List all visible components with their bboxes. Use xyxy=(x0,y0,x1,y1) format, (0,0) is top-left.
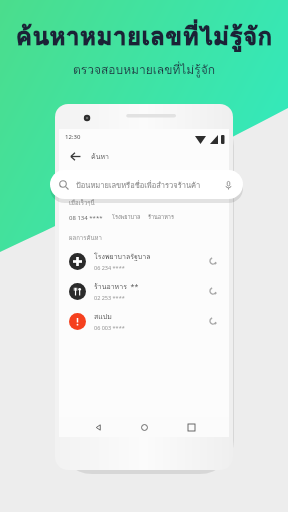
staticText: 08 134 **** xyxy=(69,214,103,222)
button[interactable]: Back xyxy=(90,419,106,435)
button[interactable]: Home xyxy=(136,419,152,435)
button[interactable]: สแปม xyxy=(59,306,229,336)
button[interactable]: Call xyxy=(206,254,220,268)
staticText: 06 234 **** xyxy=(94,264,125,271)
staticText: ผลการค้นหา xyxy=(69,233,102,243)
staticText: ค้นหาหมายเลขที่ไม่รู้จัก xyxy=(0,16,288,56)
staticText: 02 253 **** xyxy=(94,294,125,301)
button[interactable]: โรงพยาบาลรัฐบาล xyxy=(59,246,229,276)
staticText: ร้านอาหาร ** xyxy=(94,281,139,292)
button[interactable]: Call xyxy=(206,314,220,328)
button[interactable]: Recents xyxy=(183,419,199,435)
staticText: ตรวจสอบหมายเลขที่ไม่รู้จัก xyxy=(0,60,288,79)
staticText: ร้านอาหาร xyxy=(148,213,174,222)
button[interactable]: ป้อนหมายเลขหรือชื่อเพื่อสำรวจร้านค้า xyxy=(50,170,243,199)
button[interactable]: ร้านอาหาร ** xyxy=(59,276,229,306)
staticText: ค้นหา xyxy=(91,151,110,162)
staticText: โรงพยาบาล xyxy=(112,213,141,222)
staticText: 06 003 **** xyxy=(94,324,125,331)
staticText: ป้อนหมายเลขหรือชื่อเพื่อสำรวจร้านค้า xyxy=(76,179,201,191)
staticText: โรงพยาบาลรัฐบาล xyxy=(94,251,151,262)
staticText: 12:30 xyxy=(65,133,81,141)
button[interactable]: Voice search xyxy=(222,179,234,191)
staticText: สแปม xyxy=(94,311,112,322)
button[interactable]: Call xyxy=(206,284,220,298)
button[interactable]: Back xyxy=(67,148,83,164)
staticText: เมื่อเร็วๆนี้ xyxy=(69,198,95,208)
